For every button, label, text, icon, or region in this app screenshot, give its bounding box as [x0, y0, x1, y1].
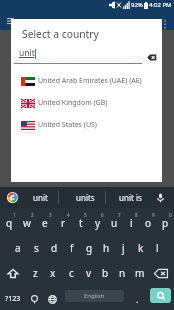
staticText: n: [119, 266, 126, 280]
button[interactable]: unit is: [108, 187, 152, 208]
button[interactable]: y: [89, 212, 106, 234]
staticText: 6: [101, 212, 104, 218]
staticText: k: [138, 241, 144, 255]
staticText: Select a country: [22, 27, 99, 41]
button[interactable]: e: [36, 212, 54, 234]
staticText: .: [136, 293, 139, 305]
button[interactable]: d: [45, 237, 63, 259]
staticText: u: [111, 216, 118, 230]
button[interactable]: Menu: [4, 15, 16, 27]
staticText: s: [34, 241, 39, 255]
button[interactable]: m: [131, 262, 148, 284]
staticText: l: [156, 241, 159, 255]
button[interactable]: b: [97, 262, 114, 284]
button[interactable]: l: [149, 237, 166, 259]
button[interactable]: j: [115, 237, 132, 259]
button[interactable]: p: [157, 212, 174, 234]
staticText: unit: [19, 47, 35, 59]
button[interactable]: a: [9, 237, 27, 259]
staticText: ?123: [5, 294, 21, 304]
staticText: 92%: [131, 1, 143, 9]
button[interactable]: United States (US): [11, 114, 162, 136]
staticText: English: [84, 292, 105, 300]
button[interactable]: Change language: [43, 288, 61, 310]
button[interactable]: United Arab Emirates (UAE) (AE): [11, 70, 162, 92]
staticText: United States (US): [38, 120, 97, 130]
button[interactable]: i: [123, 212, 140, 234]
button[interactable]: Clear text: [146, 54, 157, 61]
staticText: p: [162, 216, 169, 230]
button[interactable]: g: [81, 237, 98, 259]
staticText: o: [145, 216, 152, 230]
staticText: j: [122, 241, 125, 255]
button[interactable]: English: [65, 290, 124, 302]
button[interactable]: ?123: [0, 288, 26, 310]
staticText: 1: [13, 212, 16, 218]
button[interactable]: o: [140, 212, 157, 234]
staticText: 4:02 PM: [149, 1, 172, 9]
button[interactable]: Shift: [0, 262, 26, 284]
staticText: 4: [67, 212, 70, 218]
button[interactable]: More options: [160, 19, 170, 29]
button[interactable]: t: [72, 212, 89, 234]
button[interactable]: United Kingdom (GB): [11, 92, 162, 114]
staticText: w: [23, 216, 31, 230]
staticText: r: [61, 216, 66, 230]
button[interactable]: Search: [150, 288, 171, 303]
button[interactable]: k: [132, 237, 149, 259]
staticText: United Kingdom (GB): [38, 98, 108, 108]
button[interactable]: Google search: [4, 187, 21, 208]
button[interactable]: Backspace: [148, 262, 174, 284]
staticText: units: [76, 192, 95, 203]
staticText: y: [95, 216, 101, 230]
staticText: 7: [118, 212, 121, 218]
staticText: unit: [33, 192, 48, 203]
staticText: 8: [135, 212, 138, 218]
button[interactable]: f: [63, 237, 81, 259]
button[interactable]: q: [0, 212, 18, 234]
staticText: b: [102, 266, 109, 280]
staticText: h: [103, 241, 110, 255]
staticText: x: [50, 266, 56, 280]
button[interactable]: z: [26, 262, 44, 284]
staticText: q: [6, 216, 13, 230]
staticText: m: [135, 266, 145, 280]
button[interactable]: .: [129, 288, 146, 310]
staticText: United Arab Emirates (UAE) (AE): [38, 76, 142, 86]
staticText: v: [86, 266, 92, 280]
button[interactable]: c: [62, 262, 80, 284]
staticText: f: [70, 241, 74, 255]
staticText: z: [33, 266, 38, 280]
staticText: d: [51, 241, 58, 255]
button[interactable]: w: [18, 212, 36, 234]
staticText: 9: [152, 212, 155, 218]
staticText: g: [86, 241, 93, 255]
staticText: 3: [49, 212, 52, 218]
button[interactable]: n: [114, 262, 131, 284]
staticText: 0: [169, 212, 172, 218]
button[interactable]: h: [98, 237, 115, 259]
staticText: a: [15, 241, 21, 255]
staticText: 2: [31, 212, 34, 218]
button[interactable]: units: [62, 187, 109, 208]
button[interactable]: r: [54, 212, 72, 234]
button[interactable]: x: [44, 262, 62, 284]
staticText: unit is: [119, 192, 142, 203]
staticText: i: [130, 216, 133, 230]
staticText: e: [42, 216, 48, 230]
staticText: c: [69, 266, 74, 280]
staticText: t: [79, 216, 83, 230]
button[interactable]: Emoji: [26, 288, 43, 310]
button[interactable]: unit: [21, 187, 59, 208]
button[interactable]: Voice input: [150, 187, 170, 208]
button[interactable]: s: [27, 237, 45, 259]
button[interactable]: v: [80, 262, 97, 284]
staticText: 5: [84, 212, 87, 218]
button[interactable]: u: [106, 212, 123, 234]
